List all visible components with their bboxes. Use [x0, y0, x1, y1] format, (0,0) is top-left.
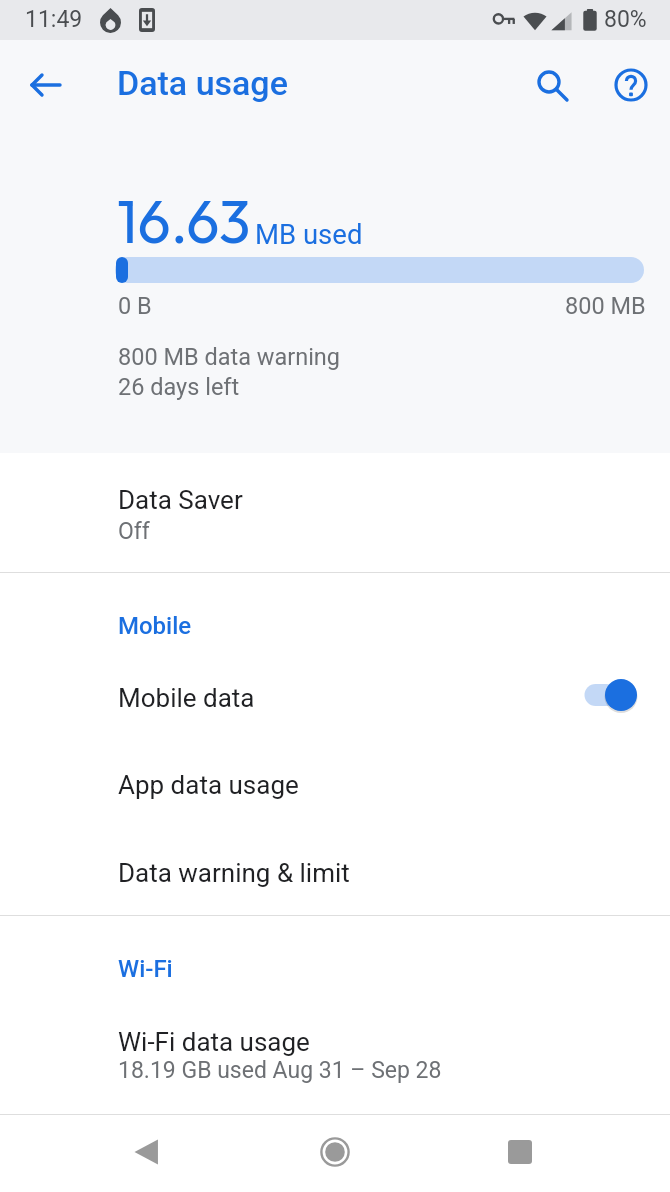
button[interactable]: Mobile data [0, 643, 670, 731]
staticText: 18.19 GB used Aug 31 – Sep 28 [118, 1057, 442, 1084]
staticText: Mobile [118, 612, 192, 640]
staticText: 80% [604, 6, 647, 33]
button[interactable]: Overview [492, 1124, 548, 1180]
staticText: Data usage [117, 63, 288, 103]
button[interactable]: Navigate up [22, 61, 70, 109]
staticText: Mobile data [118, 683, 255, 713]
staticText: Off [118, 518, 150, 545]
button[interactable]: Data warning & limit [0, 819, 670, 915]
staticText: Data Saver [118, 485, 243, 515]
staticText: Wi-Fi [118, 955, 173, 983]
button[interactable]: Wi-Fi data usage [0, 987, 670, 1114]
staticText: 800 MB data warning [118, 343, 341, 371]
staticText: 0 B [118, 292, 152, 320]
staticText: 11:49 [25, 6, 83, 33]
button[interactable]: Data Saver [0, 453, 670, 572]
button[interactable]: Search [525, 58, 573, 106]
button[interactable]: Back [119, 1124, 175, 1180]
button[interactable]: Home [307, 1124, 363, 1180]
staticText: 26 days left [118, 373, 240, 401]
staticText: 16.63 [117, 184, 251, 258]
staticText: Data warning & limit [118, 858, 350, 888]
staticText: App data usage [118, 770, 299, 800]
staticText: 800 MB [565, 292, 646, 320]
staticText: MB used [255, 218, 363, 250]
staticText: Wi-Fi data usage [118, 1027, 310, 1057]
button[interactable]: App data usage [0, 731, 670, 819]
button[interactable]: Help and feedback [607, 61, 655, 109]
